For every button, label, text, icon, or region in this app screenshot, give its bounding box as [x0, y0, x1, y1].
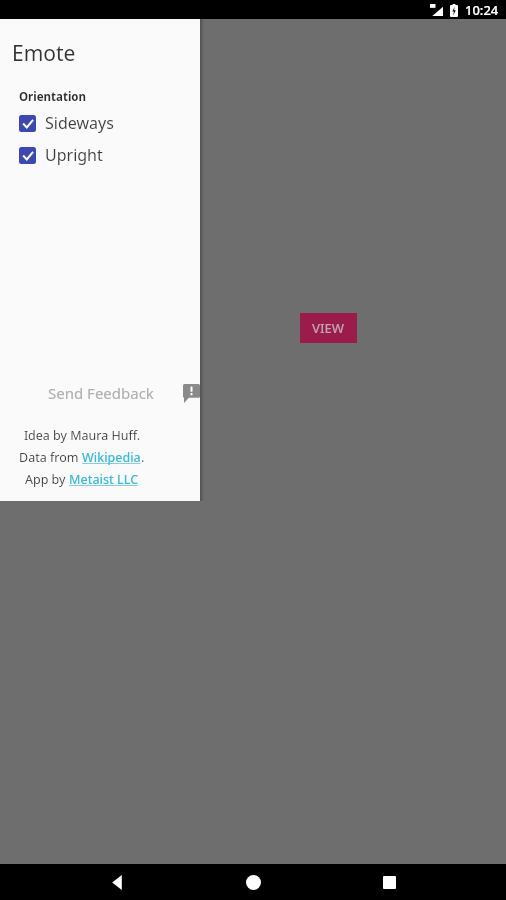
button[interactable]: Sideways [0, 110, 200, 136]
button[interactable]: Upright [0, 142, 200, 168]
button[interactable]: Send Feedback [0, 373, 200, 413]
button[interactable]: Back [100, 864, 136, 900]
staticText: Send Feedback [48, 383, 154, 403]
staticText: Metaist LLC [69, 471, 139, 488]
staticText: App by [25, 471, 69, 488]
staticText: Data from [19, 449, 82, 466]
staticText: Upright [45, 144, 103, 166]
button[interactable]: Send Feedback [183, 383, 200, 403]
button[interactable]: VIEW [300, 313, 357, 343]
staticText: Wikipedia [82, 449, 141, 466]
staticText: Orientation [19, 89, 86, 105]
button[interactable]: Recent apps [371, 864, 407, 900]
staticText: Idea by Maura Huff. [0, 427, 164, 444]
staticText: Sideways [45, 112, 114, 134]
button[interactable]: Home [235, 864, 271, 900]
staticText: . [141, 449, 145, 466]
staticText: VIEW [312, 319, 345, 337]
button[interactable]: Wikipedia [82, 449, 141, 466]
staticText: Emote [12, 39, 76, 68]
staticText: 10:24 [465, 1, 499, 19]
button[interactable]: Metaist LLC [69, 471, 139, 488]
